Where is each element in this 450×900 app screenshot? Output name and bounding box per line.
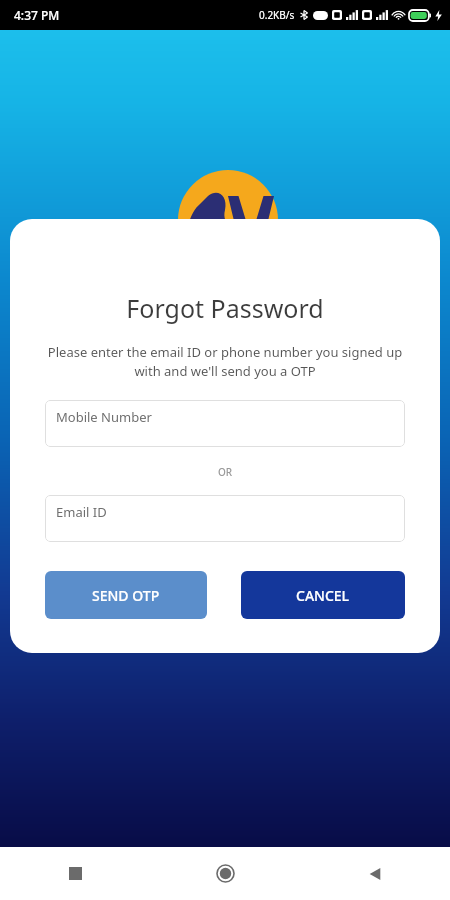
button[interactable]: SEND OTP	[45, 571, 207, 619]
button[interactable]: Home	[150, 847, 300, 900]
staticText: Email ID	[56, 503, 107, 521]
button[interactable]: Back	[300, 847, 450, 900]
staticText: 0.2KB/s	[259, 8, 295, 22]
button[interactable]: CANCEL	[241, 571, 405, 619]
staticText: SEND OTP	[92, 586, 160, 605]
staticText: Forgot Password	[126, 291, 324, 325]
staticText: CANCEL	[296, 586, 350, 605]
staticText: Mobile Number	[56, 408, 152, 426]
staticText: 4:37 PM	[14, 7, 60, 23]
staticText: Please enter the email ID or phone numbe…	[28, 343, 422, 380]
button[interactable]: Email ID	[45, 495, 405, 542]
button[interactable]: Mobile Number	[45, 400, 405, 447]
button[interactable]: Recent apps	[0, 847, 150, 900]
staticText: OR	[218, 465, 233, 479]
